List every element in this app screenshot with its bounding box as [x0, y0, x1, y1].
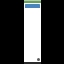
button[interactable]	[25, 4, 40, 8]
button[interactable]: Compose	[37, 58, 40, 61]
